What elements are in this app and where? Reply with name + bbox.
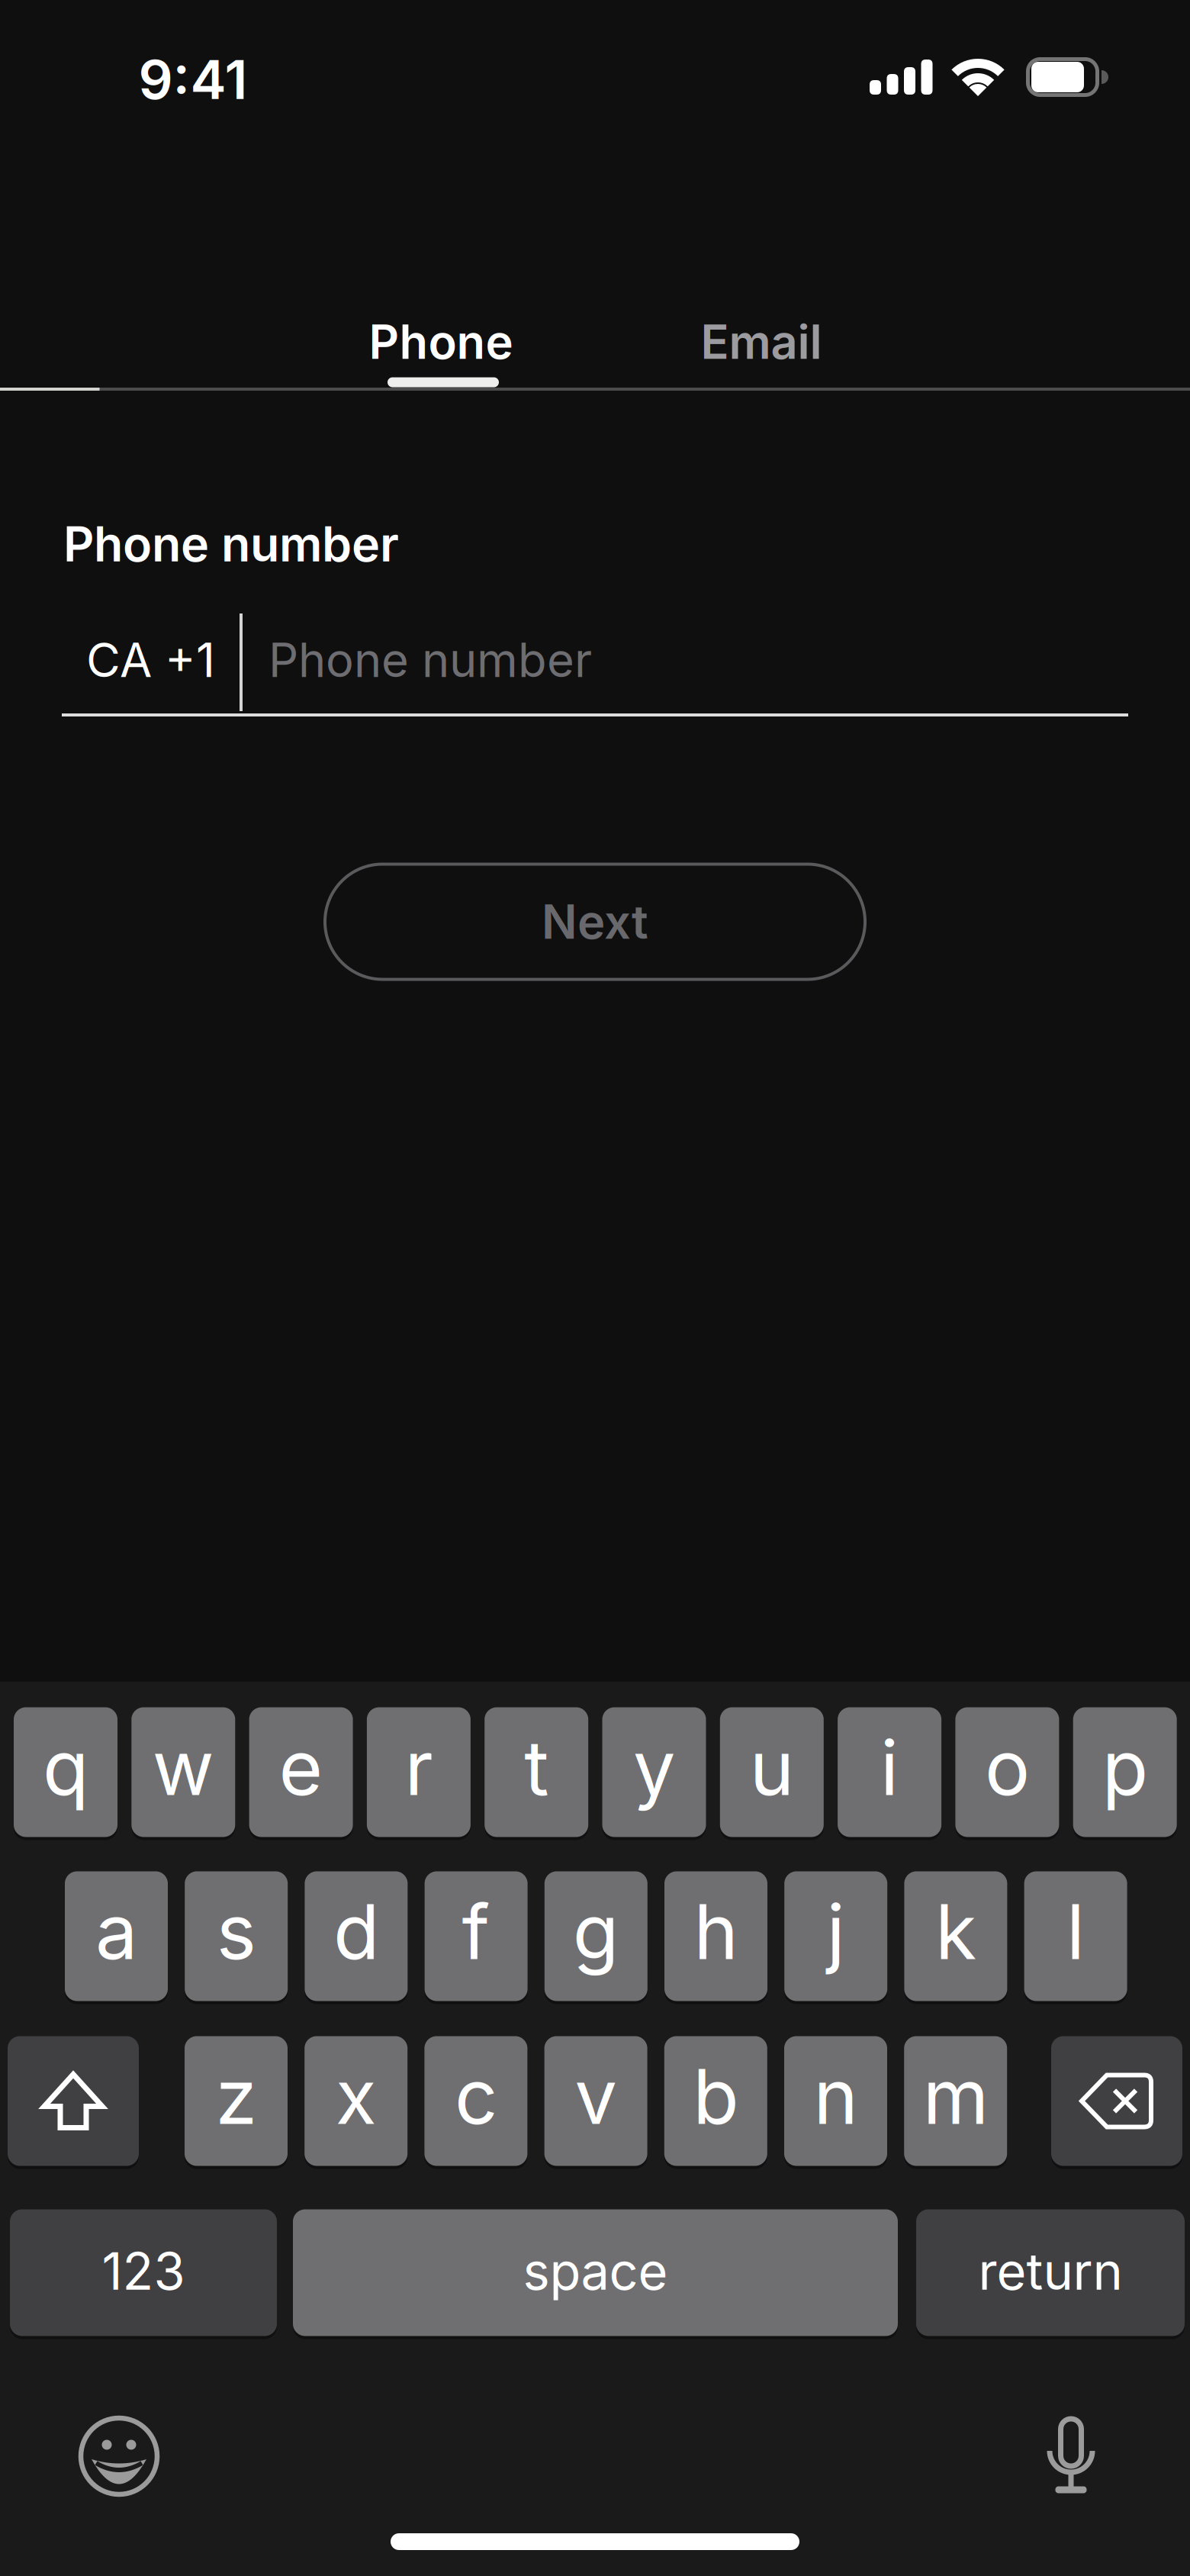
staticText: k: [935, 1887, 976, 1976]
staticText: 123: [102, 2241, 185, 2301]
button[interactable]: m: [904, 2036, 1007, 2166]
button[interactable]: c: [424, 2036, 527, 2166]
staticText: Phone: [369, 314, 513, 369]
staticText: Next: [542, 894, 648, 949]
staticText: u: [750, 1723, 794, 1812]
button[interactable]: y: [602, 1707, 706, 1837]
staticText: s: [216, 1887, 256, 1976]
button[interactable]: o: [955, 1707, 1059, 1837]
staticText: x: [335, 2052, 377, 2141]
button[interactable]: r: [367, 1707, 471, 1837]
button[interactable]: t: [485, 1707, 588, 1837]
staticText: v: [575, 2052, 617, 2141]
button[interactable]: v: [544, 2036, 647, 2166]
staticText: q: [43, 1723, 88, 1812]
button[interactable]: u: [720, 1707, 824, 1837]
staticText: CA +1: [86, 632, 215, 688]
button[interactable]: 123: [10, 2209, 277, 2336]
button[interactable]: l: [1024, 1871, 1127, 2001]
button[interactable]: h: [664, 1871, 767, 2001]
button[interactable]: g: [545, 1871, 647, 2001]
button[interactable]: Phone: [304, 300, 578, 384]
button[interactable]: f: [425, 1871, 528, 2001]
button[interactable]: [8, 2036, 139, 2166]
button[interactable]: a: [65, 1871, 168, 2001]
button[interactable]: Next: [323, 863, 867, 981]
staticText: z: [215, 2052, 257, 2141]
staticText: o: [985, 1723, 1030, 1812]
staticText: Phone number: [63, 516, 399, 572]
staticText: 9:41: [138, 48, 248, 111]
staticText: Phone number: [269, 632, 592, 688]
button[interactable]: z: [185, 2036, 288, 2166]
staticText: Email: [701, 314, 822, 369]
staticText: a: [95, 1887, 137, 1976]
staticText: p: [1102, 1723, 1148, 1812]
button[interactable]: e: [249, 1707, 353, 1837]
staticText: l: [1066, 1887, 1085, 1976]
button[interactable]: Phone number: [269, 611, 1128, 709]
button[interactable]: w: [131, 1707, 235, 1837]
staticText: j: [827, 1887, 845, 1976]
staticText: t: [524, 1723, 549, 1812]
staticText: r: [405, 1723, 433, 1812]
button[interactable]: Email: [624, 300, 899, 384]
button[interactable]: j: [784, 1871, 887, 2001]
staticText: m: [923, 2052, 988, 2141]
button[interactable]: CA +1: [0, 632, 215, 688]
staticText: n: [814, 2052, 858, 2141]
button[interactable]: p: [1073, 1707, 1177, 1837]
button[interactable]: [1051, 2036, 1182, 2166]
staticText: c: [455, 2052, 497, 2141]
staticText: f: [462, 1887, 490, 1976]
staticText: b: [693, 2052, 739, 2141]
button[interactable]: d: [305, 1871, 408, 2001]
staticText: w: [152, 1723, 214, 1812]
button[interactable]: return: [916, 2209, 1185, 2336]
button[interactable]: x: [305, 2036, 407, 2166]
staticText: y: [633, 1723, 675, 1812]
button[interactable]: [1028, 2411, 1112, 2495]
staticText: i: [880, 1723, 899, 1812]
button[interactable]: s: [185, 1871, 288, 2001]
button[interactable]: b: [664, 2036, 767, 2166]
button[interactable]: [76, 2413, 160, 2497]
button[interactable]: k: [904, 1871, 1007, 2001]
staticText: space: [523, 2241, 668, 2301]
button[interactable]: space: [293, 2209, 898, 2336]
button[interactable]: i: [838, 1707, 941, 1837]
staticText: return: [978, 2241, 1122, 2301]
staticText: g: [573, 1887, 619, 1976]
staticText: e: [279, 1723, 323, 1812]
button[interactable]: q: [14, 1707, 117, 1837]
staticText: d: [333, 1887, 379, 1976]
staticText: h: [694, 1887, 738, 1976]
button[interactable]: n: [784, 2036, 887, 2166]
